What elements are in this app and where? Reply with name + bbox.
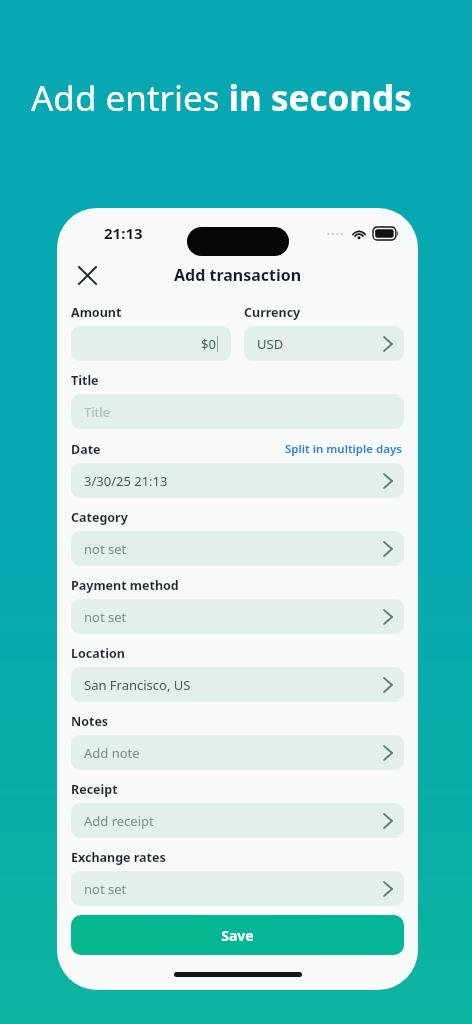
button[interactable]: not set <box>71 599 404 634</box>
button[interactable]: not set <box>71 871 404 906</box>
staticText: Add note <box>84 744 384 762</box>
staticText: Add transaction <box>174 264 302 286</box>
button[interactable]: $0 <box>71 326 231 361</box>
staticText: not set <box>84 540 384 558</box>
button[interactable]: Title <box>71 394 404 429</box>
staticText: Split in multiple days <box>285 441 402 457</box>
staticText: Add receipt <box>84 812 384 830</box>
staticText: not set <box>84 608 384 626</box>
button[interactable]: 3/30/25 21:13 <box>71 463 404 498</box>
staticText: Exchange rates <box>71 849 166 866</box>
staticText: Location <box>71 645 125 662</box>
staticText: Currency <box>244 304 301 321</box>
staticText: 21:13 <box>104 223 143 243</box>
staticText: Payment method <box>71 577 179 594</box>
staticText: Title <box>71 372 99 389</box>
staticText: USD <box>257 335 384 353</box>
staticText: Category <box>71 509 128 526</box>
button[interactable]: USD <box>244 326 404 361</box>
button[interactable]: Split in multiple days <box>283 440 404 458</box>
staticText: Amount <box>71 304 122 321</box>
button[interactable]: Add receipt <box>71 803 404 838</box>
staticText: Add entries in seconds <box>31 74 412 122</box>
staticText: Receipt <box>71 781 118 798</box>
staticText: Date <box>71 441 101 458</box>
button[interactable]: Close <box>65 256 109 294</box>
button[interactable]: not set <box>71 531 404 566</box>
button[interactable]: Add note <box>71 735 404 770</box>
staticText: Save <box>221 926 254 945</box>
button[interactable]: San Francisco, US <box>71 667 404 702</box>
staticText: $0 <box>201 335 216 353</box>
staticText: Notes <box>71 713 109 730</box>
staticText: Title <box>84 403 110 421</box>
staticText: 3/30/25 21:13 <box>84 472 384 490</box>
staticText: San Francisco, US <box>84 676 384 694</box>
staticText: not set <box>84 880 384 898</box>
button[interactable]: Save <box>71 915 404 955</box>
